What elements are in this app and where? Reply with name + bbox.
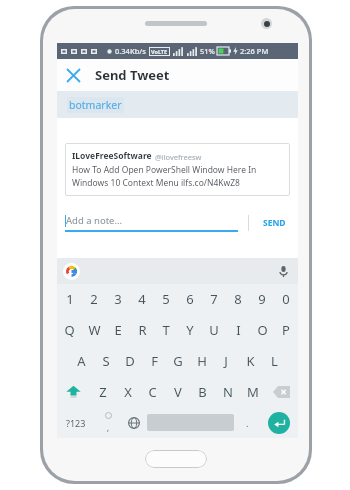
button[interactable]: W: [82, 314, 106, 345]
staticText: C: [148, 383, 157, 401]
button[interactable]: .: [234, 407, 260, 438]
button[interactable]: Z: [90, 376, 115, 407]
staticText: A: [77, 352, 86, 370]
button[interactable]: S: [94, 345, 118, 376]
button[interactable]: Home: [145, 450, 207, 468]
staticText: Z: [99, 383, 107, 401]
staticText: ?123: [66, 417, 86, 429]
button[interactable]: ILoveFreeSoftware: [65, 143, 290, 196]
staticText: 6: [186, 290, 194, 308]
button[interactable]: Y: [178, 314, 202, 345]
staticText: M: [247, 383, 259, 401]
button[interactable]: botmarker: [57, 91, 298, 118]
button[interactable]: ?123: [57, 407, 95, 438]
button[interactable]: SEND: [259, 214, 290, 232]
button[interactable]: N: [215, 376, 240, 407]
staticText: R: [138, 321, 147, 339]
button[interactable]: 7: [202, 284, 226, 314]
button[interactable]: K: [238, 345, 262, 376]
staticText: ILoveFreeSoftware: [72, 150, 152, 162]
button[interactable]: T: [154, 314, 178, 345]
button[interactable]: Add a note...: [65, 214, 238, 232]
staticText: How To Add Open PowerShell Window Here I…: [72, 164, 257, 176]
staticText: 8: [234, 290, 242, 308]
button[interactable]: X: [115, 376, 140, 407]
staticText: Windows 10 Context Menu ilfs.co/N4KwZ8: [72, 177, 240, 189]
button[interactable]: Voice input: [274, 262, 292, 280]
staticText: D: [125, 352, 135, 370]
button[interactable]: G: [166, 345, 190, 376]
button[interactable]: H: [190, 345, 214, 376]
staticText: Add a note...: [66, 214, 123, 227]
staticText: O: [257, 321, 268, 339]
staticText: 1: [66, 290, 74, 308]
staticText: 5: [162, 290, 170, 308]
staticText: ,: [107, 422, 110, 433]
staticText: VoLTE: [151, 48, 168, 55]
staticText: N: [223, 383, 233, 401]
staticText: T: [162, 321, 170, 339]
staticText: SEND: [263, 217, 286, 229]
button[interactable]: 8: [226, 284, 250, 314]
button[interactable]: F: [142, 345, 166, 376]
button[interactable]: D: [118, 345, 142, 376]
staticText: X: [124, 383, 132, 401]
button[interactable]: 6: [178, 284, 202, 314]
button[interactable]: Q: [57, 314, 82, 345]
button[interactable]: 1: [57, 284, 82, 314]
staticText: botmarker: [69, 98, 122, 112]
staticText: 4: [138, 290, 146, 308]
button[interactable]: P: [274, 314, 298, 345]
staticText: 7: [210, 290, 218, 308]
button[interactable]: E: [106, 314, 130, 345]
staticText: 0.34Kb/s: [115, 46, 146, 56]
button[interactable]: L: [262, 345, 286, 376]
button[interactable]: Close: [57, 59, 89, 91]
button[interactable]: J: [214, 345, 238, 376]
button[interactable]: Emoji: [95, 407, 121, 438]
staticText: G: [173, 352, 183, 370]
staticText: Q: [64, 321, 75, 339]
button[interactable]: 9: [250, 284, 274, 314]
staticText: S: [102, 352, 110, 370]
staticText: .: [246, 417, 249, 429]
button[interactable]: U: [202, 314, 226, 345]
button[interactable]: 4: [130, 284, 154, 314]
button[interactable]: Backspace: [265, 376, 298, 407]
staticText: 2: [90, 290, 98, 308]
staticText: @ilovefreesw: [155, 152, 202, 162]
button[interactable]: A: [69, 345, 94, 376]
button[interactable]: 5: [154, 284, 178, 314]
staticText: P: [282, 321, 290, 339]
staticText: E: [114, 321, 122, 339]
button[interactable]: Change language: [121, 407, 147, 438]
button[interactable]: 3: [106, 284, 130, 314]
button[interactable]: Google: [63, 263, 80, 280]
staticText: L: [271, 352, 278, 370]
button[interactable]: 2: [82, 284, 106, 314]
button[interactable]: V: [165, 376, 190, 407]
staticText: B: [198, 383, 207, 401]
staticText: 51%: [200, 46, 215, 56]
staticText: Y: [186, 321, 194, 339]
staticText: K: [246, 352, 255, 370]
button[interactable]: O: [250, 314, 274, 345]
button[interactable]: C: [140, 376, 165, 407]
staticText: F: [151, 352, 158, 370]
staticText: I: [236, 321, 241, 339]
staticText: J: [224, 352, 228, 370]
button[interactable]: R: [130, 314, 154, 345]
button[interactable]: Shift: [57, 376, 90, 407]
staticText: 9: [258, 290, 266, 308]
button[interactable]: 0: [274, 284, 298, 314]
staticText: U: [209, 321, 219, 339]
button[interactable]: B: [190, 376, 215, 407]
button[interactable]: I: [226, 314, 250, 345]
staticText: Send Tweet: [95, 66, 170, 84]
staticText: 3: [114, 290, 122, 308]
button[interactable]: M: [240, 376, 265, 407]
button[interactable]: Enter: [260, 407, 298, 438]
staticText: 0: [282, 290, 290, 308]
staticText: H: [197, 352, 207, 370]
